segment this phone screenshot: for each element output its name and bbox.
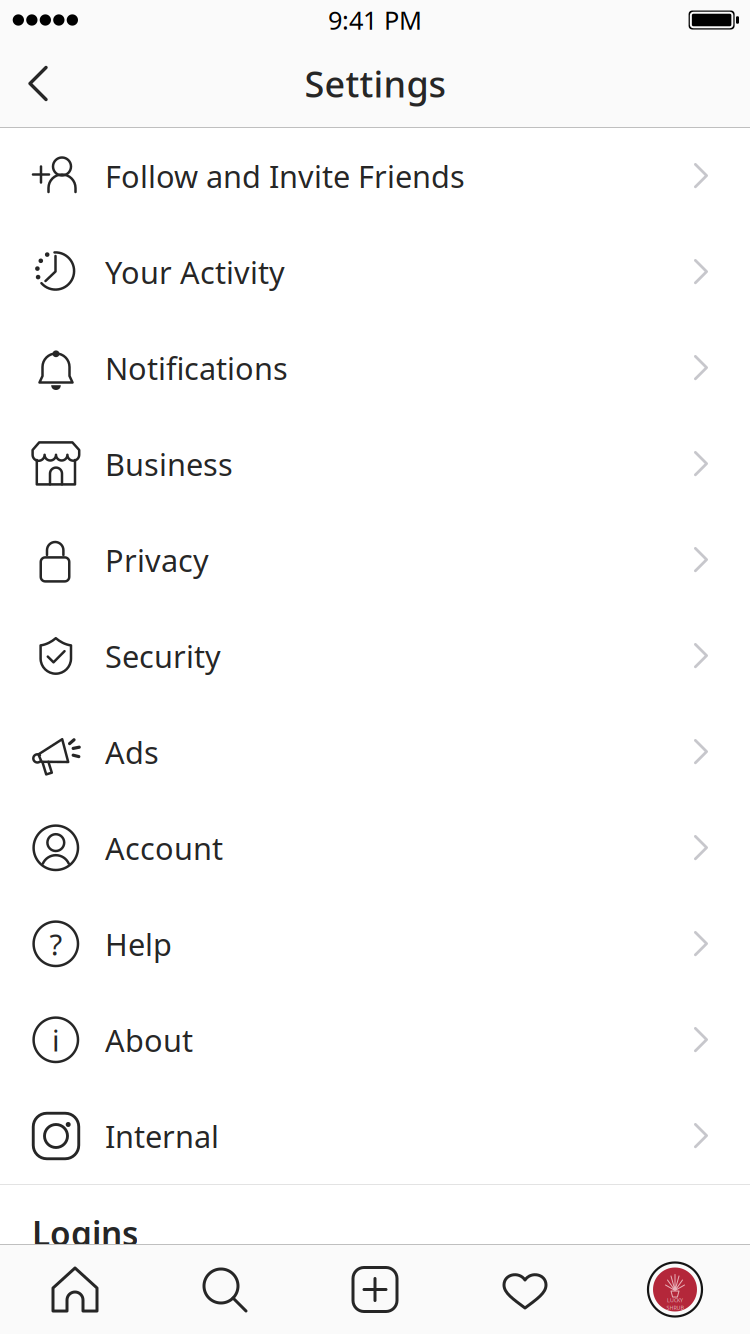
- staticText: LUCKY: [667, 1297, 683, 1304]
- button[interactable]: Account: [0, 800, 750, 896]
- button[interactable]: ?: [0, 896, 750, 992]
- staticText: Help: [105, 924, 172, 964]
- button[interactable]: Search: [150, 1266, 300, 1313]
- button[interactable]: i: [0, 992, 750, 1088]
- button[interactable]: Privacy: [0, 512, 750, 608]
- button[interactable]: Notifications: [0, 320, 750, 416]
- staticText: Your Activity: [105, 252, 285, 292]
- staticText: i: [52, 1020, 60, 1059]
- staticText: Internal: [105, 1116, 219, 1156]
- button[interactable]: Back: [0, 47, 72, 119]
- staticText: ?: [49, 924, 62, 963]
- staticText: Settings: [304, 60, 445, 107]
- staticText: Follow and Invite Friends: [105, 156, 465, 196]
- staticText: Notifications: [105, 348, 288, 388]
- button[interactable]: Security: [0, 608, 750, 704]
- staticText: Security: [105, 636, 221, 676]
- button[interactable]: Follow and Invite Friends: [0, 128, 750, 224]
- button[interactable]: Business: [0, 416, 750, 512]
- button[interactable]: Profile: [600, 1261, 750, 1317]
- button[interactable]: Ads: [0, 704, 750, 800]
- button[interactable]: Your Activity: [0, 224, 750, 320]
- staticText: Business: [105, 444, 233, 484]
- button[interactable]: Activity: [450, 1266, 600, 1313]
- staticText: Logins: [32, 1211, 138, 1255]
- staticText: SHRUB: [666, 1304, 683, 1311]
- staticText: 9:41 PM: [328, 3, 422, 37]
- staticText: Privacy: [105, 540, 209, 580]
- button[interactable]: New post: [300, 1266, 450, 1313]
- button[interactable]: Internal: [0, 1088, 750, 1184]
- staticText: Ads: [105, 732, 159, 772]
- button[interactable]: Home: [0, 1266, 150, 1313]
- staticText: About: [105, 1020, 193, 1060]
- staticText: Account: [105, 828, 223, 868]
